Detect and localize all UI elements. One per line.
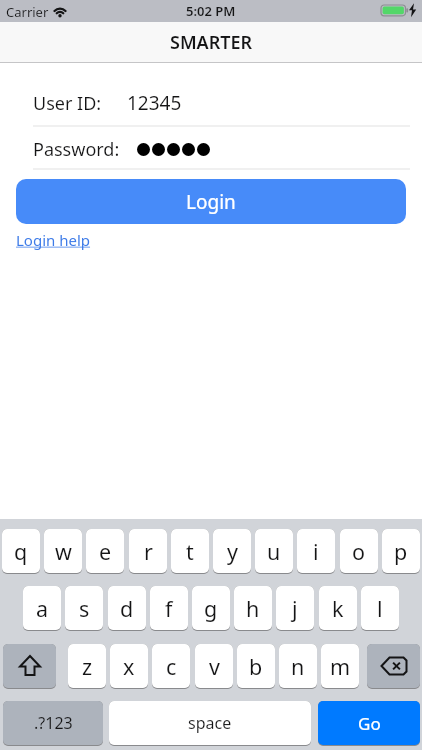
button[interactable]: u: [255, 529, 293, 574]
staticText: n: [291, 652, 305, 681]
button[interactable]: z: [68, 644, 106, 689]
staticText: .?123: [34, 712, 73, 734]
button[interactable]: j: [276, 586, 314, 631]
staticText: SMARTER: [170, 30, 253, 55]
button[interactable]: r: [129, 529, 167, 574]
button[interactable]: Password:: [33, 130, 422, 168]
staticText: Login: [186, 189, 236, 215]
staticText: c: [166, 652, 177, 681]
staticText: h: [246, 594, 260, 623]
button[interactable]: h: [234, 586, 272, 631]
button[interactable]: m: [321, 644, 359, 689]
button[interactable]: s: [65, 586, 103, 631]
staticText: t: [186, 537, 194, 566]
button[interactable]: i: [297, 529, 335, 574]
button[interactable]: c: [152, 644, 190, 689]
button[interactable]: w: [44, 529, 82, 574]
staticText: l: [377, 594, 383, 623]
button[interactable]: q: [2, 529, 40, 574]
staticText: Carrier: [6, 3, 49, 21]
button[interactable]: User ID:: [33, 81, 422, 125]
staticText: d: [120, 594, 134, 623]
staticText: z: [82, 652, 93, 681]
staticText: s: [79, 594, 90, 623]
button[interactable]: p: [382, 529, 420, 574]
staticText: a: [36, 594, 49, 623]
staticText: i: [313, 537, 319, 566]
staticText: q: [14, 537, 28, 566]
button[interactable]: x: [110, 644, 148, 689]
staticText: v: [209, 652, 220, 681]
staticText: r: [144, 537, 153, 566]
button[interactable]: o: [340, 529, 378, 574]
staticText: p: [394, 537, 408, 566]
staticText: j: [292, 594, 298, 623]
button[interactable]: .?123: [3, 701, 103, 746]
staticText: k: [332, 594, 344, 623]
button[interactable]: b: [237, 644, 275, 689]
button[interactable]: y: [213, 529, 251, 574]
staticText: w: [55, 537, 72, 566]
staticText: b: [249, 652, 263, 681]
button[interactable]: d: [108, 586, 146, 631]
button[interactable]: v: [195, 644, 233, 689]
staticText: Go: [358, 712, 381, 735]
staticText: space: [188, 712, 232, 734]
staticText: y: [227, 537, 238, 566]
button[interactable]: a: [23, 586, 61, 631]
staticText: e: [99, 537, 112, 566]
staticText: f: [165, 594, 173, 623]
staticText: o: [352, 537, 366, 566]
staticText: User ID:: [33, 91, 102, 116]
button[interactable]: k: [319, 586, 357, 631]
staticText: x: [123, 652, 135, 681]
button[interactable]: f: [150, 586, 188, 631]
staticText: 12345: [127, 90, 182, 116]
button[interactable]: Go: [318, 701, 420, 746]
staticText: Password:: [33, 137, 120, 162]
staticText: g: [204, 594, 218, 623]
button[interactable]: t: [171, 529, 209, 574]
button[interactable]: n: [279, 644, 317, 689]
button[interactable]: [3, 644, 56, 689]
button[interactable]: Login: [16, 179, 406, 224]
staticText: u: [267, 537, 281, 566]
staticText: m: [330, 652, 351, 681]
staticText: 5:02 PM: [186, 2, 236, 20]
button[interactable]: e: [86, 529, 124, 574]
button[interactable]: [367, 644, 420, 689]
button[interactable]: l: [361, 586, 399, 631]
button[interactable]: Login help: [16, 230, 91, 250]
button[interactable]: g: [192, 586, 230, 631]
button[interactable]: space: [109, 701, 311, 746]
